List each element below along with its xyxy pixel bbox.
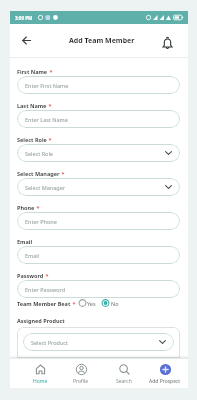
staticText: Add Prospect bbox=[149, 378, 181, 385]
staticText: 3:00 PM bbox=[15, 15, 33, 21]
staticText: * bbox=[47, 136, 52, 143]
button[interactable]: Profile bbox=[67, 363, 95, 385]
button[interactable]: Enter Phone bbox=[17, 212, 180, 230]
button[interactable]: Enter First Name bbox=[17, 76, 180, 94]
staticText: Select Role bbox=[17, 136, 47, 143]
staticText: Add Team Member bbox=[69, 36, 135, 46]
button[interactable]: Search bbox=[110, 363, 138, 385]
staticText: Last Name bbox=[17, 102, 47, 109]
staticText: * bbox=[35, 204, 40, 211]
staticText: Phone bbox=[17, 204, 35, 211]
staticText: Password bbox=[17, 272, 44, 279]
staticText: Select Manager bbox=[25, 184, 66, 191]
staticText: Enter Last Name bbox=[25, 116, 68, 123]
button[interactable] bbox=[22, 36, 31, 45]
button[interactable]: Enter Last Name bbox=[17, 110, 180, 128]
staticText: Select Product bbox=[31, 339, 68, 346]
staticText: * bbox=[48, 68, 53, 75]
staticText: * bbox=[60, 170, 65, 177]
button[interactable] bbox=[161, 36, 174, 52]
button[interactable]: Enter Password bbox=[17, 280, 180, 298]
button[interactable]: Select Manager bbox=[17, 178, 180, 196]
staticText: * bbox=[44, 272, 49, 279]
staticText: Email bbox=[25, 252, 40, 259]
staticText: First Name bbox=[17, 68, 48, 75]
staticText: * bbox=[71, 300, 76, 307]
button[interactable]: Select Product bbox=[23, 333, 174, 351]
staticText: Select Role bbox=[25, 150, 53, 157]
staticText: Enter First Name bbox=[25, 82, 69, 89]
button[interactable] bbox=[101, 298, 119, 308]
button[interactable]: Home bbox=[26, 363, 54, 385]
staticText: Select Manager bbox=[17, 170, 60, 177]
staticText: Home bbox=[33, 378, 48, 385]
staticText: No bbox=[111, 300, 119, 307]
staticText: * bbox=[47, 102, 52, 109]
staticText: Profile bbox=[73, 378, 89, 385]
button[interactable] bbox=[78, 298, 98, 308]
staticText: Yes bbox=[87, 300, 96, 307]
staticText: Assigned Product bbox=[17, 317, 65, 324]
staticText: Team Member Beat bbox=[17, 300, 71, 307]
staticText: Search bbox=[116, 378, 132, 385]
button[interactable]: Select Role bbox=[17, 144, 180, 162]
staticText: Enter Phone bbox=[25, 218, 57, 225]
button[interactable]: Email bbox=[17, 246, 180, 264]
staticText: Email bbox=[17, 238, 33, 245]
staticText: Enter Password bbox=[25, 286, 66, 293]
button[interactable]: Add Prospect bbox=[146, 363, 184, 385]
